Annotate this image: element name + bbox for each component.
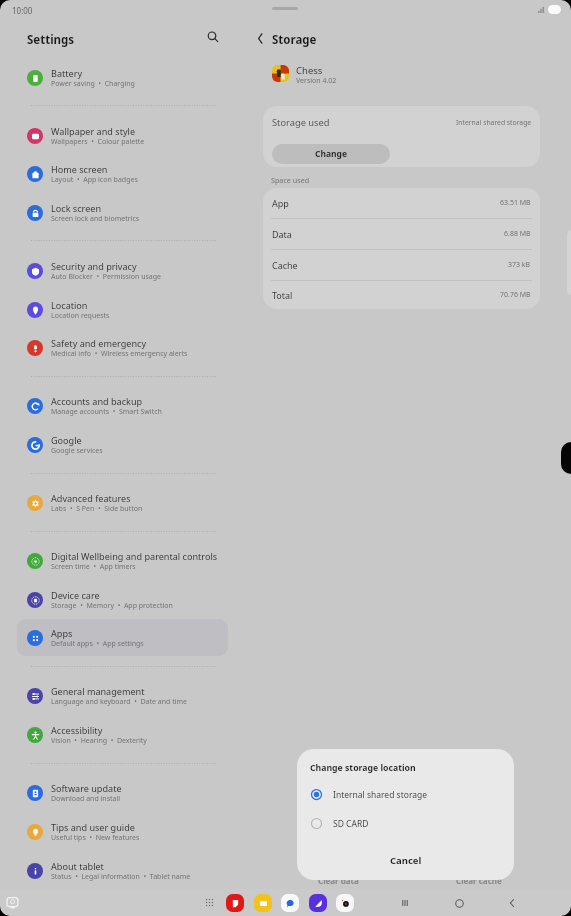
button[interactable]: Location: [17, 291, 228, 328]
staticText: Useful tips • New features: [51, 833, 140, 843]
staticText: Layout • App icon badges: [51, 175, 138, 185]
button[interactable]: General management: [17, 677, 228, 714]
button[interactable]: Wallpaper and style: [17, 117, 228, 154]
staticText: Google services: [51, 446, 103, 456]
staticText: Home screen: [51, 163, 108, 175]
staticText: Tips and user guide: [51, 821, 135, 833]
staticText: 10:00: [12, 5, 33, 16]
staticText: Storage • Memory • App protection: [51, 601, 173, 611]
button[interactable]: Back: [505, 896, 519, 910]
staticText: Medical info • Wireless emergency alerts: [51, 349, 188, 359]
staticText: Vision • Hearing • Dexterity: [51, 736, 147, 746]
staticText: Manage accounts • Smart Switch: [51, 407, 162, 417]
button[interactable]: Digital Wellbeing and parental controls: [17, 542, 228, 579]
staticText: Security and privacy: [51, 260, 137, 272]
button[interactable]: Cancel: [310, 849, 501, 871]
button[interactable]: Home screen: [17, 155, 228, 192]
staticText: Power saving • Charging: [51, 79, 135, 89]
button[interactable]: Internal shared storage: [310, 784, 501, 805]
staticText: Cache: [272, 259, 298, 271]
button[interactable]: browser: [309, 894, 327, 912]
staticText: Internal shared storage: [333, 789, 428, 801]
staticText: Screen time • App timers: [51, 562, 136, 572]
button[interactable]: Recents: [398, 896, 412, 910]
staticText: Total: [272, 289, 293, 301]
staticText: Change storage location: [310, 762, 416, 774]
staticText: 70.76 MB: [500, 290, 531, 300]
button[interactable]: Back: [249, 27, 271, 49]
button[interactable]: Change: [272, 144, 390, 164]
button[interactable]: Tips and user guide: [17, 813, 228, 850]
button[interactable]: Home: [452, 896, 466, 910]
button[interactable]: Lock screen: [17, 194, 228, 231]
staticText: Google: [51, 434, 82, 446]
staticText: SD CARD: [333, 818, 369, 830]
button[interactable]: pdf: [226, 894, 244, 912]
button[interactable]: files: [254, 894, 272, 912]
staticText: General management: [51, 685, 145, 697]
staticText: Default apps • App settings: [51, 639, 144, 649]
staticText: Status • Legal information • Tablet name: [51, 872, 191, 882]
button[interactable]: Search: [202, 26, 224, 48]
staticText: Apps: [51, 627, 73, 639]
staticText: Digital Wellbeing and parental controls: [51, 550, 218, 562]
button[interactable]: Software update: [17, 774, 228, 811]
staticText: Clear data: [318, 875, 359, 886]
button[interactable]: Cache: [263, 250, 540, 280]
staticText: Space used: [271, 175, 310, 185]
staticText: 6.88 MB: [504, 229, 531, 239]
staticText: Data: [272, 228, 292, 240]
staticText: Internal shared storage: [456, 118, 532, 127]
button[interactable]: Apps: [17, 619, 228, 656]
staticText: 63.51 MB: [500, 198, 531, 208]
staticText: Labs • S Pen • Side button: [51, 504, 143, 514]
button[interactable]: Accounts and backup: [17, 387, 228, 424]
staticText: Language and keyboard • Date and time: [51, 697, 188, 707]
button[interactable]: About tablet: [17, 852, 228, 889]
staticText: Clear cache: [456, 875, 502, 886]
button[interactable]: chat: [281, 894, 299, 912]
button[interactable]: Data: [263, 219, 540, 249]
staticText: Screen lock and biometrics: [51, 214, 140, 224]
staticText: Version 4.02: [296, 76, 337, 86]
button[interactable]: SD CARD: [310, 813, 501, 834]
button[interactable]: App: [263, 188, 540, 218]
staticText: Change: [315, 148, 348, 160]
staticText: Cancel: [390, 854, 422, 867]
button[interactable]: Accessibility: [17, 716, 228, 753]
staticText: Device care: [51, 589, 100, 601]
staticText: About tablet: [51, 860, 104, 872]
staticText: Location requests: [51, 311, 110, 321]
staticText: Safety and emergency: [51, 337, 147, 349]
staticText: 373 kB: [508, 260, 531, 270]
staticText: Location: [51, 299, 88, 311]
button[interactable]: Advanced features: [17, 484, 228, 521]
button[interactable]: Total: [263, 281, 540, 309]
staticText: Accounts and backup: [51, 395, 143, 407]
staticText: Storage: [272, 32, 317, 48]
staticText: App: [272, 197, 289, 209]
staticText: Chess: [296, 64, 323, 77]
button[interactable]: Safety and emergency: [17, 329, 228, 366]
staticText: Wallpaper and style: [51, 125, 136, 137]
staticText: Advanced features: [51, 492, 131, 504]
button[interactable]: All apps: [203, 896, 216, 909]
button[interactable]: Security and privacy: [17, 252, 228, 289]
staticText: Settings: [27, 32, 75, 48]
staticText: Software update: [51, 782, 122, 794]
staticText: Battery: [51, 67, 83, 79]
staticText: Auto Blocker • Permission usage: [51, 272, 161, 282]
staticText: Wallpapers • Colour palette: [51, 137, 145, 147]
button[interactable]: camera: [336, 894, 354, 912]
button[interactable]: Battery: [17, 59, 228, 96]
staticText: Storage used: [272, 116, 330, 129]
button[interactable]: Google: [17, 426, 228, 463]
staticText: Accessibility: [51, 724, 103, 736]
staticText: Lock screen: [51, 202, 102, 214]
staticText: Download and install: [51, 794, 121, 804]
button[interactable]: Device care: [17, 581, 228, 618]
